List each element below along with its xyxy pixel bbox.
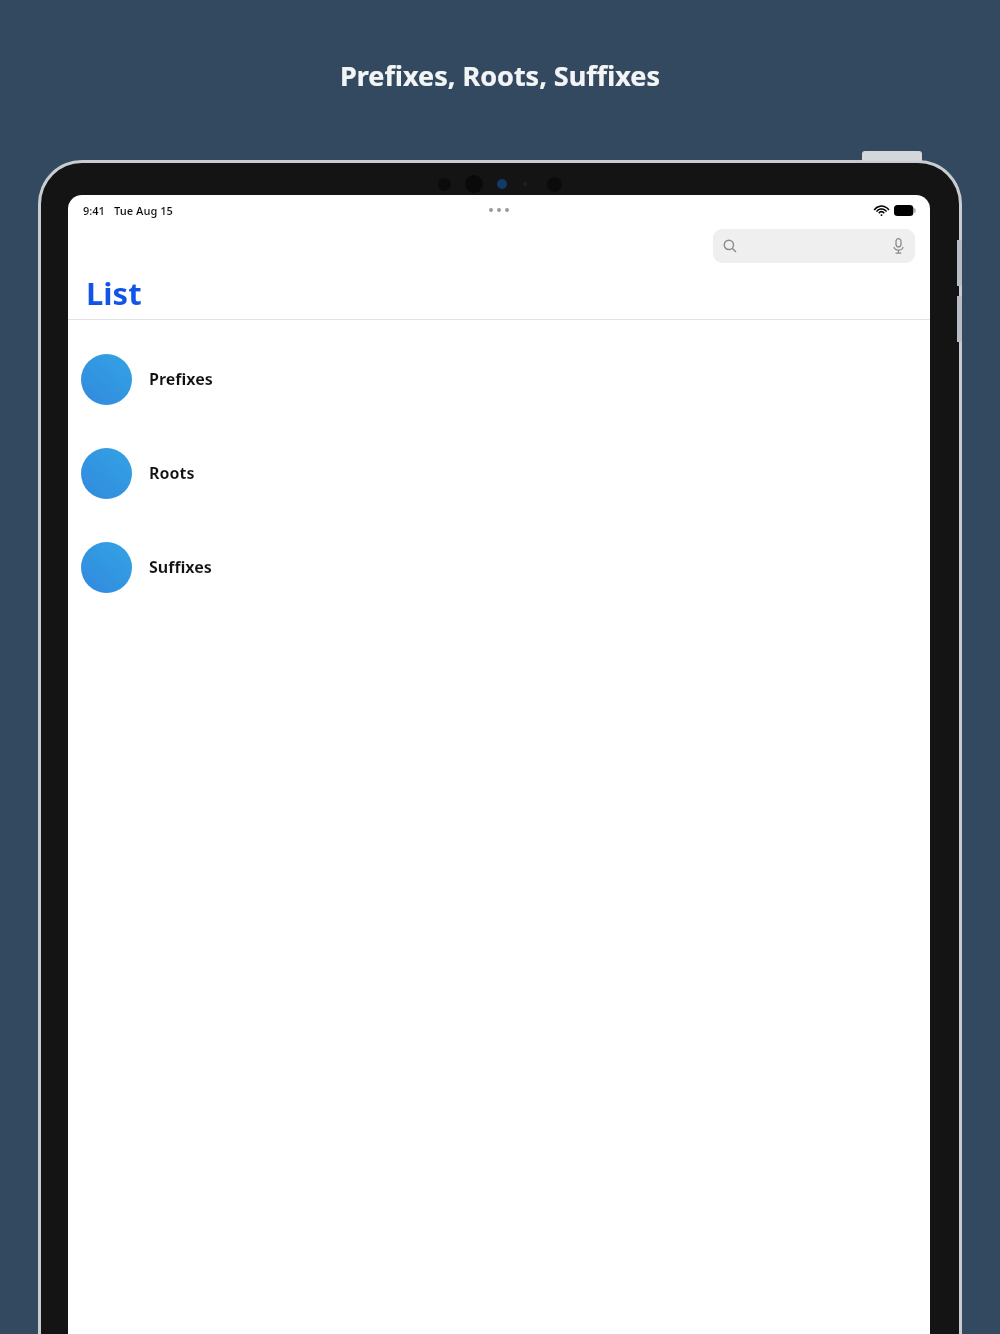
staticText: 9:41 <box>83 203 105 218</box>
staticText: Suffixes <box>149 556 212 578</box>
button[interactable]: Suffixes <box>68 520 930 614</box>
staticText: List <box>86 272 142 314</box>
button[interactable] <box>713 229 915 263</box>
button[interactable]: Roots <box>68 426 930 520</box>
button[interactable]: Prefixes <box>68 332 930 426</box>
staticText: Tue Aug 15 <box>114 203 173 218</box>
staticText: Prefixes <box>149 368 213 390</box>
staticText: Roots <box>149 462 195 484</box>
staticText: Prefixes, Roots, Suffixes <box>340 57 660 94</box>
